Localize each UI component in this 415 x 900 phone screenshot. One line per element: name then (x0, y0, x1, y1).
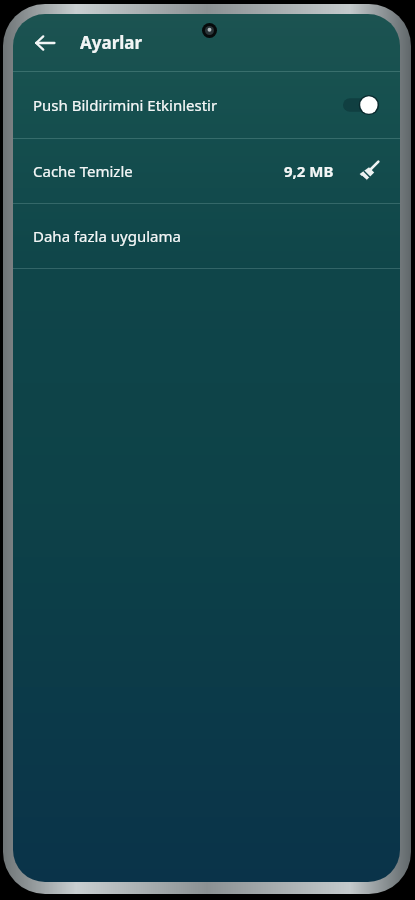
staticText: Push Bildirimini Etkinlestir (33, 95, 218, 115)
button[interactable]: Cache Temizle (13, 139, 400, 203)
staticText: Cache Temizle (33, 161, 133, 181)
staticText: 9,2 MB (284, 161, 334, 181)
staticText: Ayarlar (80, 31, 143, 54)
button[interactable]: Push Bildirimini Etkinlestir (13, 72, 400, 138)
staticText: Daha fazla uygulama (33, 226, 181, 246)
button[interactable]: Back (23, 21, 67, 65)
other: Clear cache (356, 158, 382, 184)
button[interactable]: Daha fazla uygulama (13, 204, 400, 268)
